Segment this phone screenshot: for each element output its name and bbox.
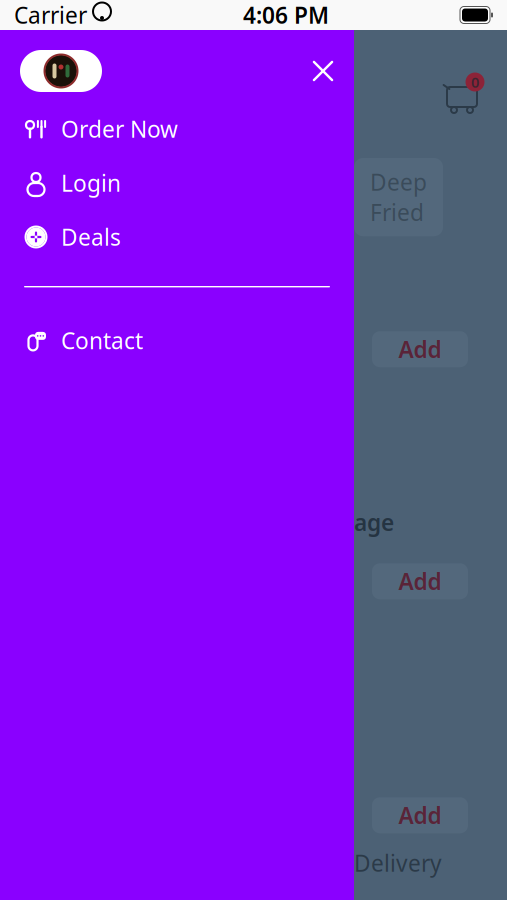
button[interactable]: Login — [0, 156, 354, 210]
staticText: Login — [61, 168, 121, 198]
button[interactable]: Order Now — [0, 102, 354, 156]
staticText: Add — [398, 566, 441, 596]
staticText — [86, 0, 92, 30]
staticText: Add — [398, 334, 441, 364]
button[interactable]: Contact — [0, 313, 354, 367]
staticText: Order Now — [61, 114, 178, 144]
button[interactable]: Restaurant logo — [20, 50, 102, 92]
button[interactable]: Add — [372, 331, 468, 367]
button[interactable]: Deals — [0, 210, 354, 264]
button[interactable]: Close menu — [301, 49, 345, 93]
staticText: Contact — [61, 325, 143, 355]
button[interactable]: Add — [372, 797, 468, 833]
staticText: age — [354, 507, 394, 537]
button[interactable]: Add — [372, 563, 468, 599]
staticText: Deals — [61, 222, 121, 252]
staticText: Carrier — [14, 0, 87, 30]
staticText: 0 — [471, 72, 479, 92]
staticText: Add — [398, 800, 441, 830]
staticText: Deep Fried — [370, 167, 427, 227]
staticText: Delivery — [354, 848, 442, 878]
staticText: 4:06 PM — [243, 0, 329, 30]
